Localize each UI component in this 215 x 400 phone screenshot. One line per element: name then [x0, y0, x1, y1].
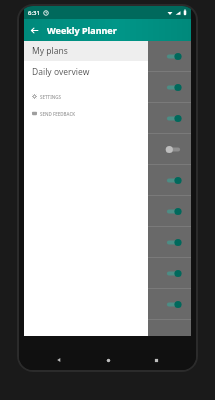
- button[interactable]: Home: [100, 352, 116, 368]
- staticText: SEND FEEDBACK: [40, 111, 76, 117]
- button[interactable]: [24, 165, 191, 196]
- button[interactable]: Daily overview: [24, 61, 148, 83]
- button[interactable]: Back: [24, 20, 44, 40]
- button[interactable]: [24, 134, 191, 165]
- staticText: My plans: [32, 45, 68, 57]
- staticText: 6:31: [28, 9, 40, 17]
- button[interactable]: [24, 289, 191, 320]
- button[interactable]: [24, 72, 191, 103]
- staticText: Daily overview: [32, 66, 90, 78]
- button[interactable]: My plans: [24, 41, 148, 61]
- button[interactable]: SEND FEEDBACK: [24, 108, 148, 119]
- button[interactable]: SETTINGS: [24, 91, 148, 102]
- button[interactable]: [24, 41, 191, 72]
- button[interactable]: [24, 196, 191, 227]
- button[interactable]: Back: [51, 352, 67, 368]
- button[interactable]: Recents: [148, 352, 164, 368]
- staticText: Weekly Planner: [47, 24, 117, 36]
- staticText: SETTINGS: [40, 94, 61, 100]
- button[interactable]: [24, 258, 191, 289]
- button[interactable]: [24, 103, 191, 134]
- button[interactable]: [24, 227, 191, 258]
